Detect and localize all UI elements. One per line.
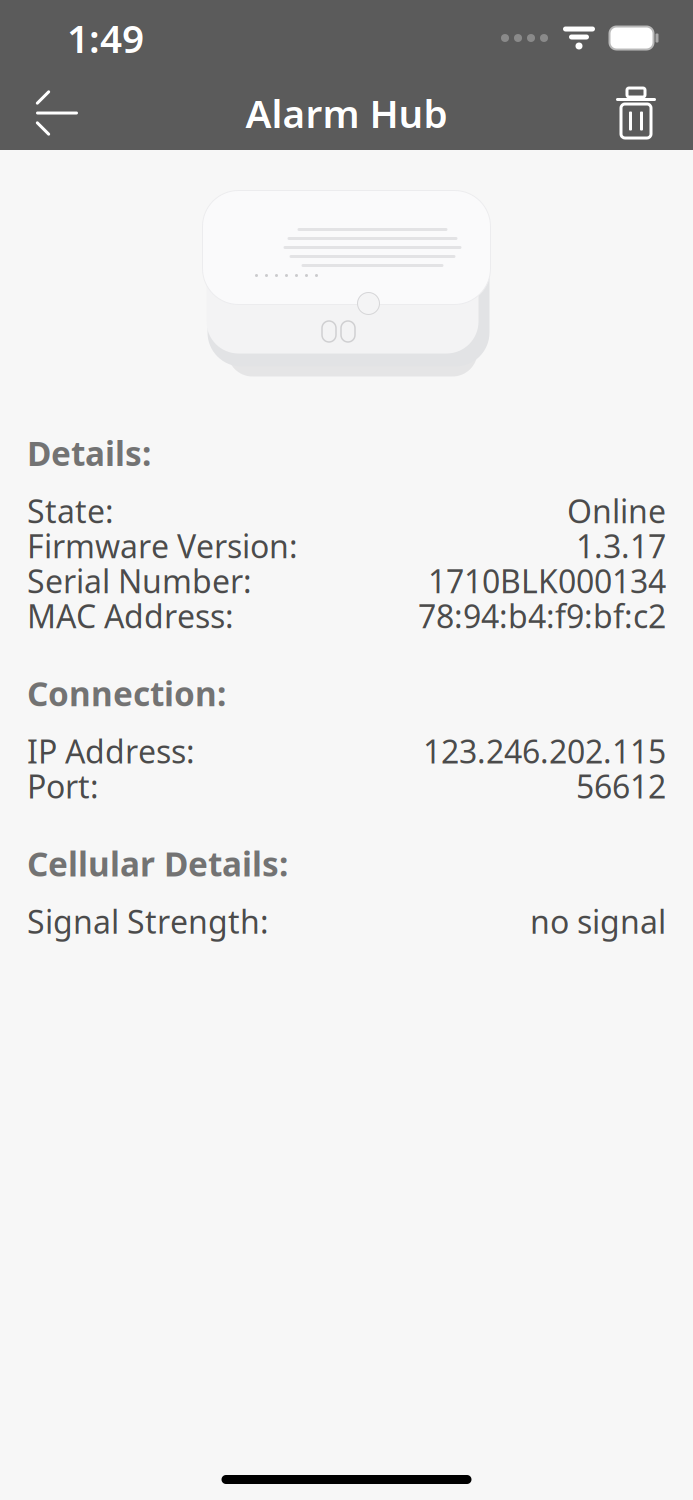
staticText: MAC Address: — [27, 594, 234, 637]
staticText: IP Address: — [27, 730, 195, 772]
staticText: Firmware Version: — [27, 524, 298, 567]
staticText: no signal — [530, 900, 666, 942]
staticText: Signal Strength: — [27, 900, 269, 942]
staticText: 123.246.202.115 — [423, 730, 666, 772]
staticText: Alarm Hub — [245, 87, 447, 139]
staticText: 1.3.17 — [576, 524, 666, 567]
staticText: 78:94:b4:f9:bf:c2 — [418, 594, 666, 637]
staticText: State: — [27, 489, 114, 532]
staticText: 1:49 — [67, 12, 144, 64]
staticText: Online — [567, 489, 666, 532]
button[interactable]: Delete — [601, 78, 671, 148]
staticText: Connection: — [27, 671, 226, 716]
staticText: Cellular Details: — [27, 841, 288, 886]
staticText: 1710BLK000134 — [428, 559, 666, 602]
button[interactable]: Back — [22, 78, 92, 148]
staticText: Serial Number: — [27, 559, 252, 602]
staticText: 56612 — [576, 765, 666, 807]
staticText: Port: — [27, 765, 99, 807]
staticText: Details: — [27, 431, 151, 475]
